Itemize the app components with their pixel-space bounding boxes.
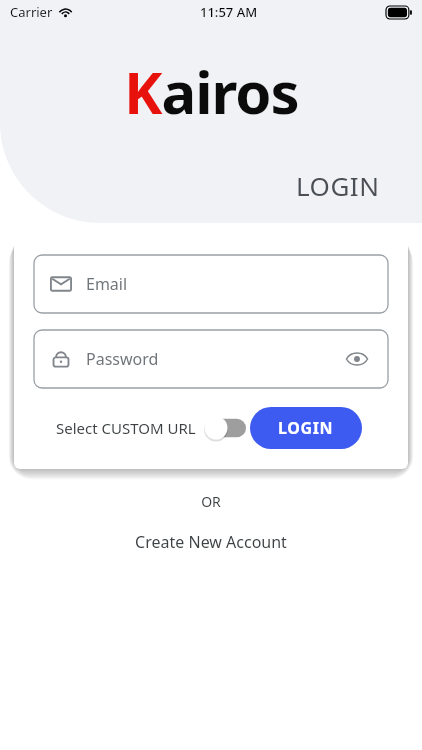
staticText: Select CUSTOM URL: [56, 418, 196, 438]
staticText: Carrier: [10, 3, 53, 21]
button[interactable]: Password: [34, 330, 388, 388]
staticText: Kairos: [124, 52, 299, 131]
button[interactable]: Create New Account: [123, 527, 299, 557]
staticText: Password: [86, 348, 159, 370]
staticText: LOGIN: [296, 168, 380, 203]
staticText: LOGIN: [278, 417, 334, 439]
staticText: 11:57 AM: [200, 3, 258, 21]
button[interactable]: Custom URL toggle: [204, 416, 246, 440]
button[interactable]: Show password: [342, 344, 372, 374]
staticText: Email: [86, 273, 128, 295]
staticText: OR: [201, 492, 221, 511]
button[interactable]: LOGIN: [250, 407, 362, 449]
button[interactable]: Email: [34, 255, 388, 313]
staticText: Create New Account: [135, 531, 287, 553]
button[interactable]: Select CUSTOM URL: [56, 416, 246, 440]
